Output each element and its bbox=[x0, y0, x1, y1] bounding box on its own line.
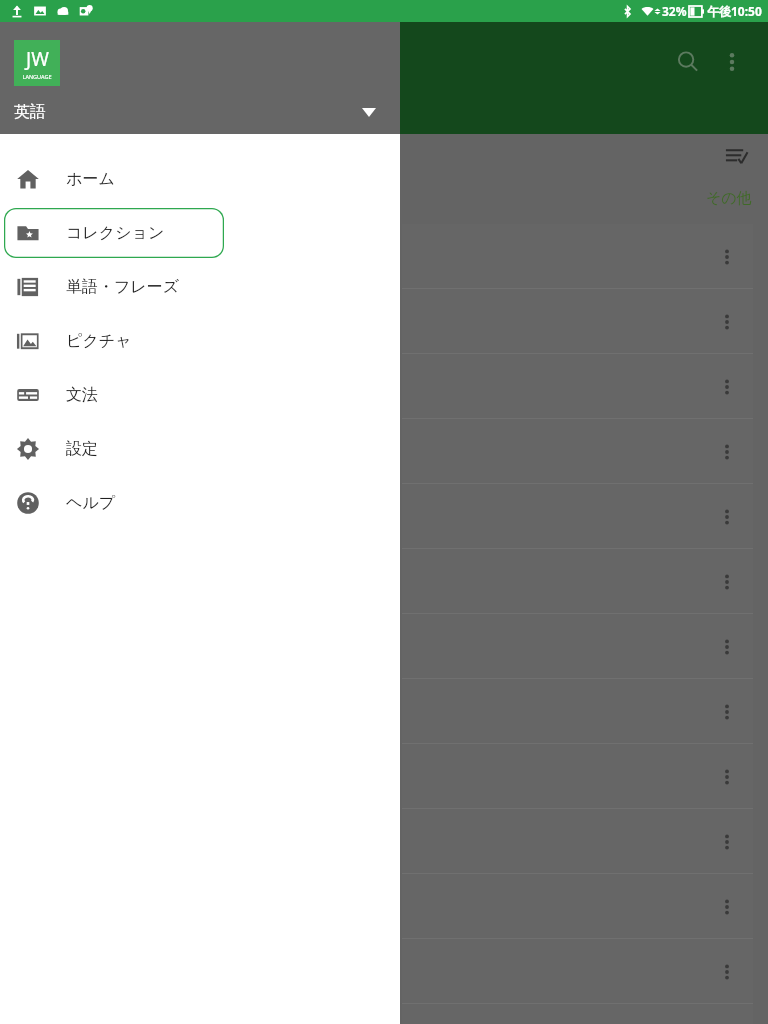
staticText: コレクション bbox=[66, 223, 165, 243]
button[interactable]: Item options bbox=[711, 501, 743, 533]
button[interactable]: Search bbox=[668, 42, 708, 82]
button[interactable]: ピクチャ bbox=[4, 316, 224, 366]
button[interactable]: コレクション bbox=[4, 208, 224, 258]
button[interactable]: 設定 bbox=[4, 424, 224, 474]
button[interactable]: JW Language bbox=[14, 40, 60, 86]
button[interactable]: Item options bbox=[711, 371, 743, 403]
button[interactable]: Item options bbox=[711, 696, 743, 728]
staticText: ピクチャ bbox=[66, 331, 132, 351]
button[interactable]: Item options bbox=[711, 566, 743, 598]
staticText: 英語 bbox=[14, 102, 46, 122]
button[interactable]: Sort bbox=[718, 138, 754, 174]
button[interactable]: Item options bbox=[711, 826, 743, 858]
button[interactable]: Item options bbox=[711, 761, 743, 793]
button[interactable]: More options bbox=[712, 42, 752, 82]
button[interactable]: Item options bbox=[711, 241, 743, 273]
staticText: 午後10:50 bbox=[707, 3, 762, 19]
button[interactable]: 英語 bbox=[0, 90, 400, 134]
button[interactable]: Item options bbox=[711, 436, 743, 468]
staticText: その他 bbox=[706, 189, 752, 208]
staticText: ヘルプ bbox=[66, 493, 116, 513]
button[interactable]: Item options bbox=[711, 306, 743, 338]
staticText: LANGUAGE bbox=[22, 73, 52, 80]
staticText: 設定 bbox=[66, 439, 98, 459]
staticText: 32% bbox=[662, 3, 687, 19]
button[interactable]: ホーム bbox=[4, 154, 224, 204]
staticText: JW bbox=[26, 46, 49, 72]
button[interactable]: ヘルプ bbox=[4, 478, 224, 528]
staticText: ホーム bbox=[66, 169, 115, 189]
button[interactable]: Item options bbox=[711, 631, 743, 663]
staticText: 単語・フレーズ bbox=[66, 277, 180, 297]
button[interactable]: Item options bbox=[711, 891, 743, 923]
staticText: 文法 bbox=[66, 385, 98, 405]
button[interactable]: 文法 bbox=[4, 370, 224, 420]
button[interactable]: 単語・フレーズ bbox=[4, 262, 224, 312]
button[interactable]: Item options bbox=[711, 956, 743, 988]
